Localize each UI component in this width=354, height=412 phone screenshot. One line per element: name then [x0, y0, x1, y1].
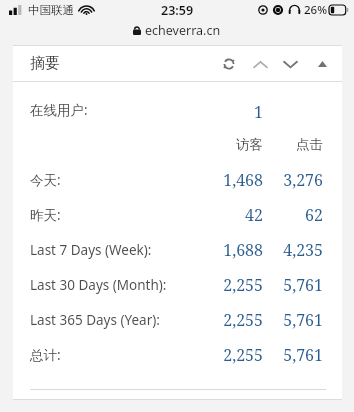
- staticText: 4,235: [263, 239, 323, 261]
- staticText: 3,276: [263, 169, 323, 191]
- staticText: 1: [203, 101, 263, 123]
- staticText: 42: [201, 204, 263, 226]
- button[interactable]: Last 7 Days (Week):: [13, 232, 342, 267]
- button[interactable]: Collapse: [310, 52, 334, 76]
- staticText: 1,688: [201, 239, 263, 261]
- staticText: 昨天:: [30, 206, 61, 224]
- staticText: echeverra.cn: [145, 22, 221, 39]
- staticText: 点击: [263, 136, 323, 153]
- staticText: 2,255: [201, 309, 263, 331]
- button[interactable]: Last 365 Days (Year):: [13, 302, 342, 337]
- staticText: 5,761: [263, 344, 323, 366]
- button[interactable]: 今天:: [13, 162, 342, 197]
- staticText: Last 365 Days (Year):: [30, 311, 160, 329]
- button[interactable]: 昨天:: [13, 197, 342, 232]
- staticText: 访客: [201, 136, 263, 153]
- staticText: 2,255: [201, 274, 263, 296]
- button[interactable]: Last 30 Days (Month):: [13, 267, 342, 302]
- staticText: 23:59: [161, 2, 194, 19]
- staticText: 中国联通: [28, 3, 74, 17]
- button[interactable]: 总计:: [13, 337, 342, 372]
- staticText: 今天:: [30, 171, 61, 189]
- staticText: 5,761: [263, 309, 323, 331]
- staticText: 总计:: [30, 346, 61, 364]
- staticText: 在线用户:: [30, 101, 88, 119]
- staticText: 62: [263, 204, 323, 226]
- button[interactable]: Next: [278, 52, 302, 76]
- button[interactable]: Refresh: [217, 52, 241, 76]
- staticText: Last 7 Days (Week):: [30, 241, 152, 259]
- staticText: 2,255: [201, 344, 263, 366]
- staticText: 5,761: [263, 274, 323, 296]
- button[interactable]: Previous: [248, 52, 272, 76]
- staticText: 摘要: [30, 54, 60, 73]
- staticText: 1,468: [201, 169, 263, 191]
- staticText: 26%: [304, 2, 327, 18]
- staticText: Last 30 Days (Month):: [30, 276, 167, 294]
